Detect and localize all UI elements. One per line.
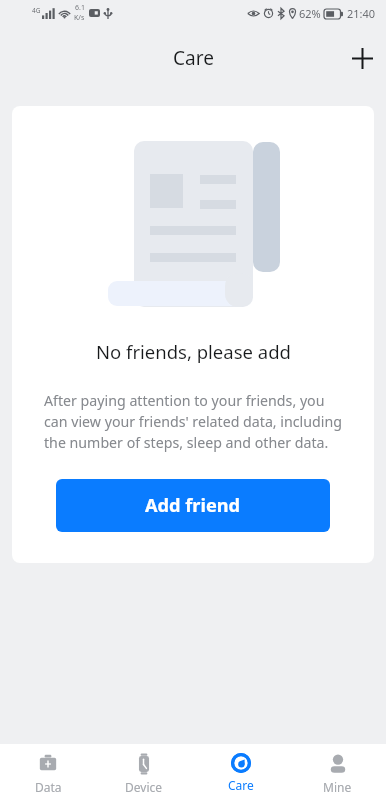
staticText: Add friend: [145, 493, 241, 518]
button[interactable]: Device: [96, 744, 192, 802]
staticText: Care: [173, 45, 214, 71]
button[interactable]: Add friend: [56, 479, 330, 532]
staticText: 62%: [299, 6, 321, 21]
staticText: Care: [228, 777, 254, 793]
staticText: After paying attention to your friends, …: [44, 391, 342, 453]
staticText: 21:40: [347, 6, 376, 21]
button[interactable]: Add: [340, 36, 384, 80]
button[interactable]: Care: [192, 744, 289, 802]
button[interactable]: Data: [0, 744, 96, 802]
staticText: K/s: [74, 13, 85, 23]
staticText: Data: [35, 779, 62, 795]
staticText: 4G: [32, 6, 41, 15]
button[interactable]: Mine: [289, 744, 386, 802]
staticText: No friends, please add: [96, 339, 291, 364]
staticText: Device: [125, 779, 163, 795]
staticText: Mine: [323, 779, 352, 795]
staticText: 6.1: [75, 3, 85, 13]
